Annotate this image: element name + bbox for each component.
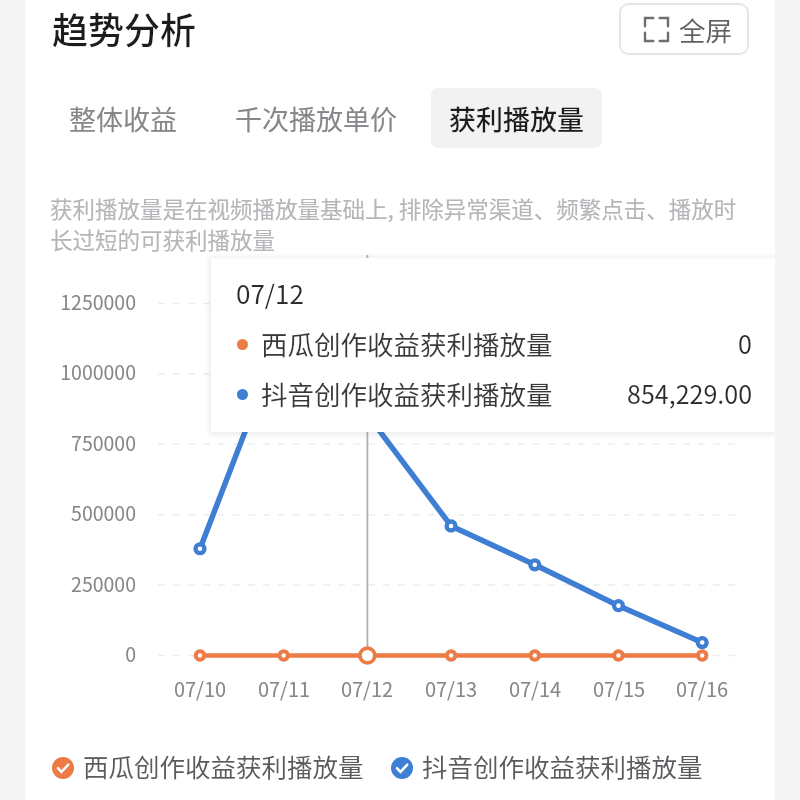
button[interactable]: 全屏 Fullscreen <box>619 3 749 55</box>
staticText: 西瓜创作收益获利播放量 <box>83 747 364 784</box>
staticText: 07/15 <box>569 674 669 703</box>
staticText: 1000000 <box>19 357 136 385</box>
staticText: 0 <box>19 639 136 667</box>
staticText: 07/16 <box>652 674 752 703</box>
staticText: 07/11 <box>234 674 334 703</box>
button[interactable]: 获利播放量 <box>431 88 602 148</box>
staticText: 854,229.00 <box>552 375 752 411</box>
staticText: 07/10 <box>150 674 250 703</box>
button[interactable]: 千次播放单价 <box>217 88 415 148</box>
staticText: 07/13 <box>401 674 501 703</box>
staticText: 抖音创作收益获利播放量 <box>261 374 553 412</box>
staticText: 整体收益 <box>69 99 177 138</box>
button[interactable]: 整体收益 <box>51 88 195 148</box>
staticText: 0 <box>552 325 752 361</box>
button[interactable]: 抖音创作收益获利播放量 <box>391 746 703 790</box>
staticText: 抖音创作收益获利播放量 <box>422 747 703 784</box>
staticText: 西瓜创作收益获利播放量 <box>261 324 553 362</box>
staticText: 07/12 <box>317 674 417 703</box>
staticText: 1250000 <box>19 287 136 315</box>
staticText: 趋势分析 <box>52 2 197 54</box>
staticText: 全屏 <box>679 10 732 48</box>
staticText: 获利播放量 <box>449 99 584 138</box>
staticText: 千次播放单价 <box>235 99 397 138</box>
staticText: 750000 <box>19 428 136 456</box>
button[interactable]: 西瓜创作收益获利播放量 <box>52 746 364 790</box>
staticText: 07/14 <box>485 674 585 703</box>
staticText: 500000 <box>19 498 136 526</box>
staticText: 获利播放量是在视频播放量基础上, 排除异常渠道、频繁点击、播放时长过短的可获利播… <box>50 192 750 255</box>
staticText: 250000 <box>19 569 136 597</box>
staticText: 07/12 <box>236 274 304 312</box>
